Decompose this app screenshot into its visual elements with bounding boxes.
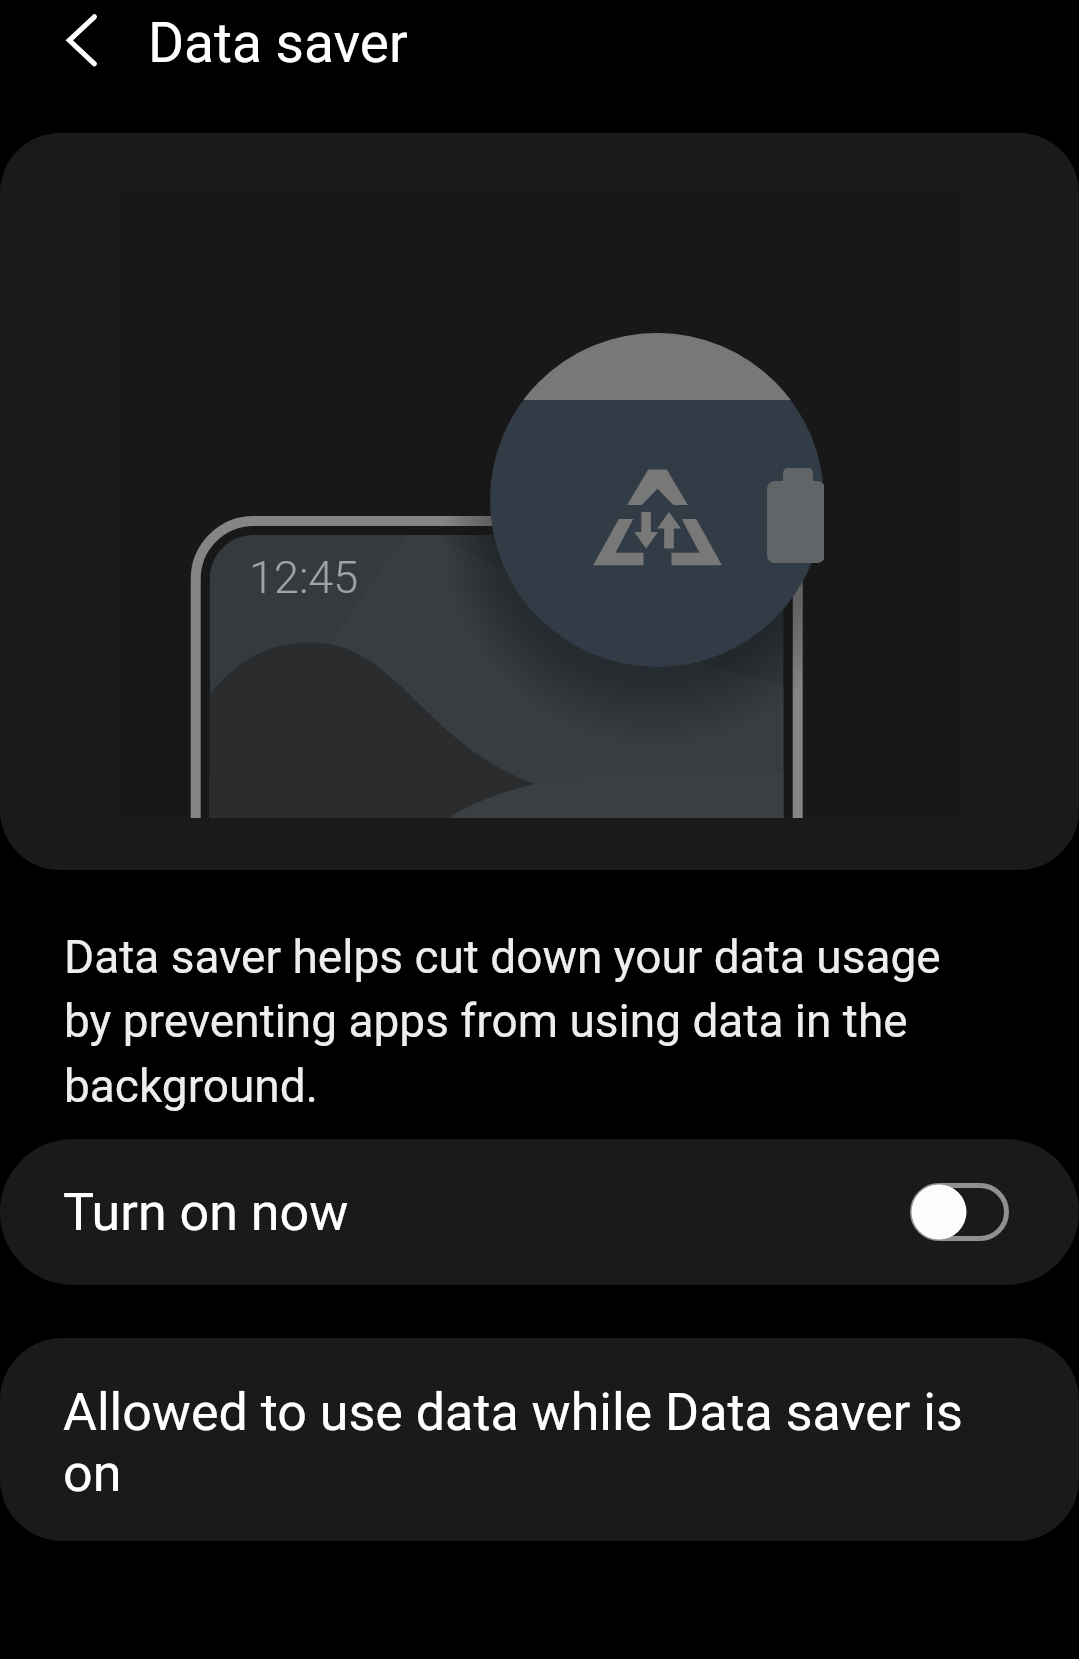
staticText: Turn on now — [63, 1182, 349, 1243]
staticText: Data saver — [148, 11, 408, 75]
button[interactable]: Back — [14, 0, 138, 79]
staticText: Data saver helps cut down your data usag… — [64, 930, 954, 1114]
button[interactable]: Turn on now — [0, 1139, 1079, 1285]
button[interactable]: Allowed to use data while Data saver is … — [0, 1338, 1079, 1541]
staticText: 12:45 — [249, 551, 359, 604]
staticText: Allowed to use data while Data saver is … — [63, 1382, 993, 1504]
